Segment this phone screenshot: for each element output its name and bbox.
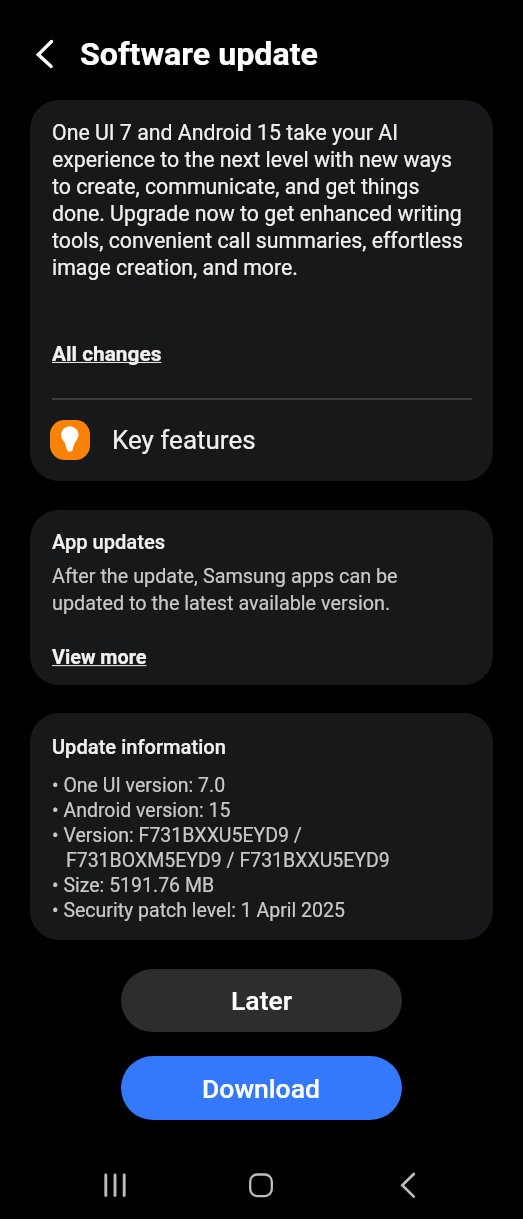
staticText: Later [231, 985, 293, 1016]
staticText: After the update, Samsung apps can be up… [52, 562, 412, 616]
button[interactable]: All changes [52, 342, 162, 366]
button[interactable]: Key features [50, 416, 470, 464]
button[interactable]: Back [384, 1161, 432, 1209]
staticText: One UI 7 and Android 15 take your AI exp… [52, 118, 472, 280]
staticText: Download [202, 1073, 321, 1104]
button[interactable]: Download [121, 1056, 402, 1120]
button[interactable]: Recent apps [91, 1161, 139, 1209]
button[interactable]: View more [52, 646, 147, 669]
staticText: App updates [52, 530, 166, 554]
button[interactable]: Home [237, 1161, 285, 1209]
staticText: Key features [112, 425, 256, 455]
staticText: All changes [52, 342, 162, 366]
staticText: Update information [52, 735, 226, 759]
staticText: • One UI version: 7.0 • Android version:… [52, 772, 390, 922]
button[interactable]: Later [121, 969, 402, 1032]
button[interactable]: Navigate up [21, 30, 69, 78]
staticText: View more [52, 646, 147, 669]
staticText: Software update [80, 35, 319, 73]
